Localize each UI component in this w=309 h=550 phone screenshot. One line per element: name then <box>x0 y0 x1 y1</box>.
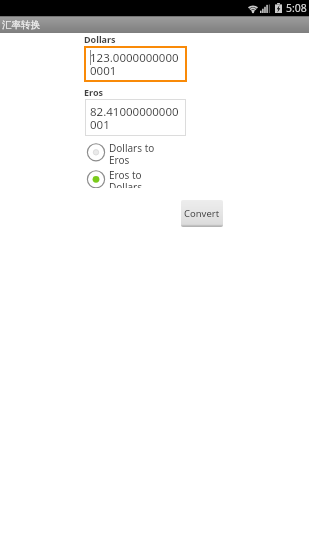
staticText: Dollars <box>84 33 116 45</box>
staticText: Convert <box>184 207 220 220</box>
staticText: 5:08 <box>286 1 307 15</box>
staticText: Eros <box>84 86 104 98</box>
staticText: 汇率转换 <box>2 19 40 31</box>
button[interactable] <box>87 170 187 188</box>
button[interactable]: Convert <box>181 200 223 227</box>
button[interactable] <box>87 143 187 169</box>
staticText: Dollars to Eros <box>109 141 155 167</box>
button[interactable]: 82.41000000000001 <box>85 99 186 136</box>
staticText: 82.41000000000001 <box>90 104 183 133</box>
button[interactable]: 123.00000000000001 <box>84 46 187 82</box>
staticText: 123.00000000000001 <box>90 50 182 79</box>
staticText: Eros to Dollars <box>109 168 143 188</box>
